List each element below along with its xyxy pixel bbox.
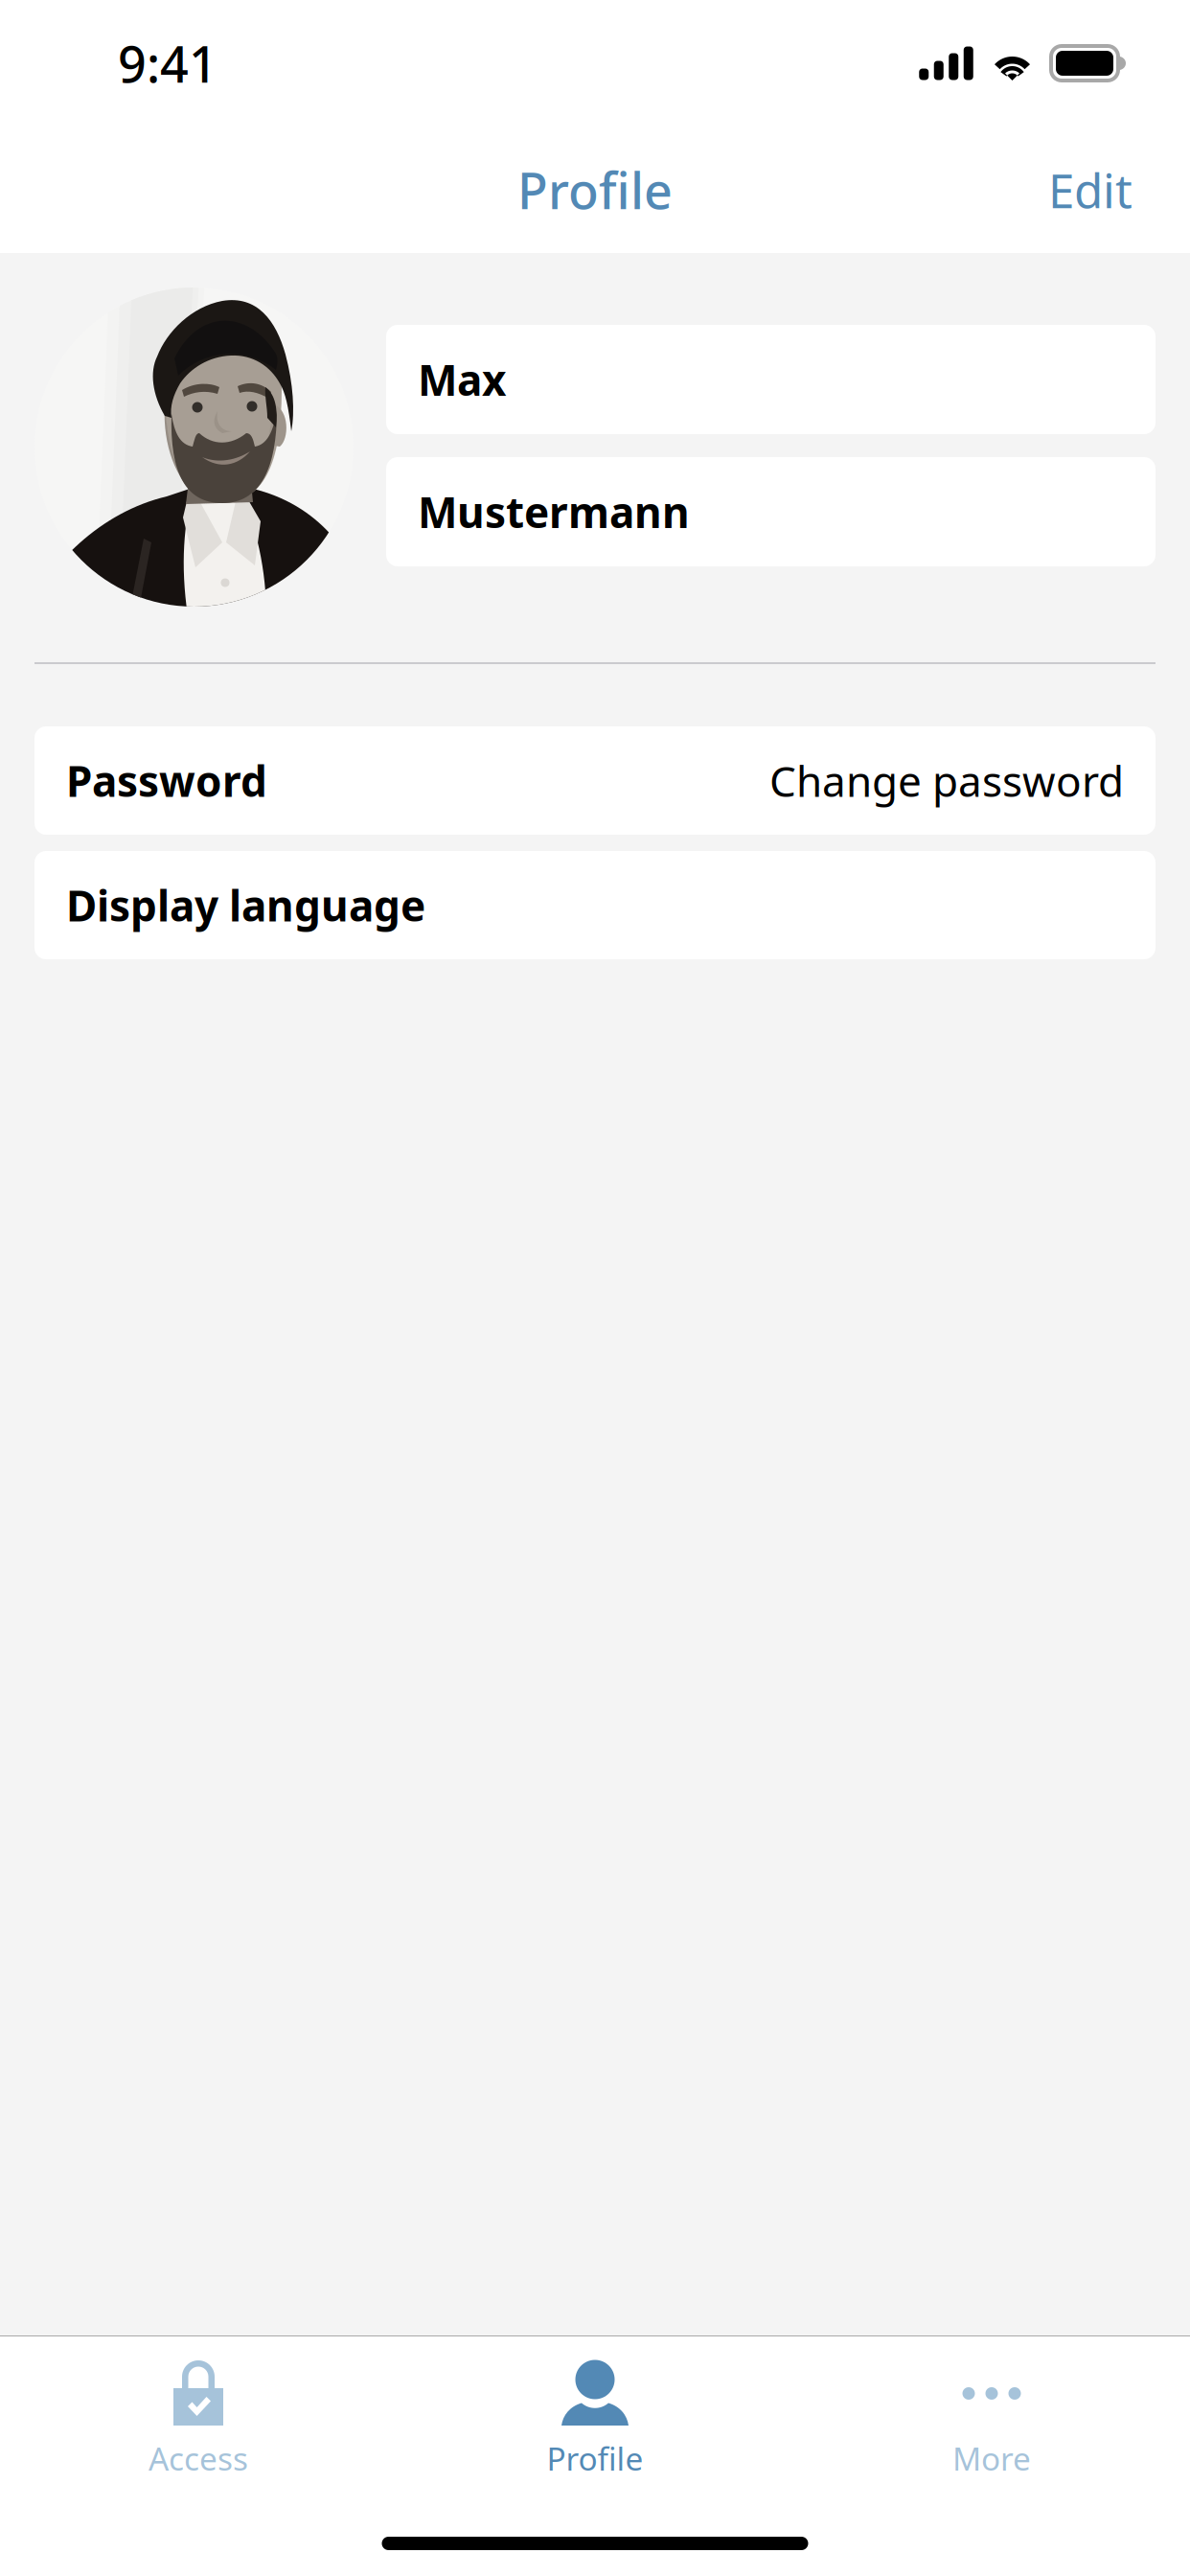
staticText: 9:41	[118, 30, 217, 96]
staticText: Profile	[517, 157, 673, 223]
staticText: Password	[66, 753, 267, 809]
staticText: Max	[418, 352, 506, 407]
staticText: Change password	[769, 753, 1124, 809]
button[interactable]: Profile	[397, 2336, 793, 2497]
staticText: Profile	[547, 2437, 643, 2479]
staticText: Edit	[1048, 158, 1133, 221]
button[interactable]: Password	[34, 726, 1156, 835]
staticText: Mustermann	[418, 484, 690, 540]
staticText: Access	[149, 2437, 248, 2479]
button[interactable]: Access	[0, 2336, 397, 2497]
button[interactable]: Edit	[1023, 135, 1157, 244]
staticText: Display language	[66, 877, 425, 933]
button[interactable]: Display language	[34, 851, 1156, 959]
button[interactable]: Max	[386, 325, 1156, 434]
staticText: More	[952, 2437, 1031, 2479]
button[interactable]: Mustermann	[386, 457, 1156, 566]
button[interactable]: More	[793, 2336, 1190, 2497]
